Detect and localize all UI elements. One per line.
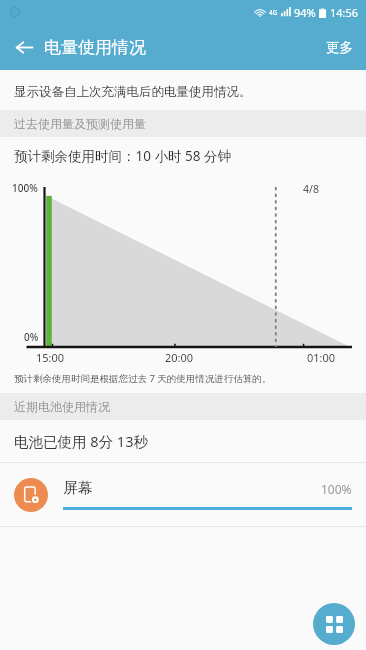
staticText: 预计剩余使用时间：10 小时 58 分钟 [14, 147, 231, 165]
staticText: 01:00 [307, 350, 336, 365]
staticText: 电池已使用 8分 13秒 [14, 431, 148, 451]
staticText: 14:56 [330, 5, 359, 20]
staticText: 20:00 [165, 350, 194, 365]
staticText: 4G [269, 8, 278, 17]
button[interactable]: Apps [313, 603, 355, 645]
button[interactable]: Back [6, 29, 42, 65]
staticText: 100% [12, 181, 38, 195]
staticText: 电量使用情况 [44, 37, 146, 58]
staticText: 过去使用量及预测使用量 [14, 116, 146, 131]
staticText: 屏幕 [63, 479, 321, 498]
staticText: 更多 [326, 39, 353, 56]
staticText: 100% [321, 481, 352, 497]
staticText: 显示设备自上次充满电后的电量使用情况。 [14, 84, 252, 100]
staticText: 近期电池使用情况 [14, 399, 110, 414]
staticText: 94% [294, 5, 316, 20]
staticText: 0% [24, 330, 39, 344]
button[interactable]: 更多 [322, 31, 357, 64]
staticText: 15:00 [36, 350, 65, 365]
button[interactable]: 屏幕 [0, 463, 366, 526]
staticText: 预计剩余使用时间是根据您过去 7 天的使用情况进行估算的。 [14, 372, 272, 385]
staticText: 4/8 [303, 182, 319, 196]
